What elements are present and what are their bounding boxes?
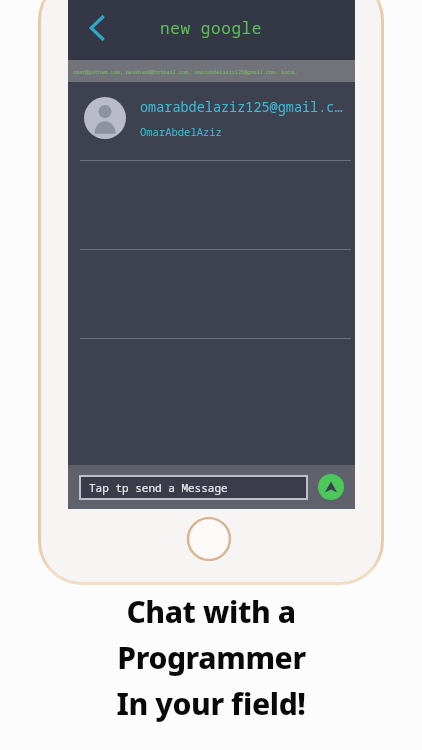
button[interactable]: omar@gotham.com, beakham8@hotmail.com, o… [68, 60, 355, 82]
staticText: OmarAbdelAziz [140, 125, 222, 139]
staticText: omar@gotham.com, beakham8@hotmail.com, o… [73, 68, 298, 75]
staticText: Tap tp send a Message [89, 480, 228, 495]
button[interactable]: Send [318, 474, 344, 500]
button[interactable]: Tap tp send a Message [79, 475, 308, 500]
staticText: Chat with a [126, 591, 296, 632]
staticText: In your field! [116, 683, 306, 724]
button[interactable]: omarabdelaziz125@gmail.c… [68, 82, 355, 154]
staticText: new google [160, 17, 263, 39]
staticText: omarabdelaziz125@gmail.c… [140, 98, 343, 116]
staticText: Programmer [117, 637, 306, 678]
button[interactable]: Back [80, 11, 114, 45]
button[interactable]: Home [186, 516, 232, 562]
